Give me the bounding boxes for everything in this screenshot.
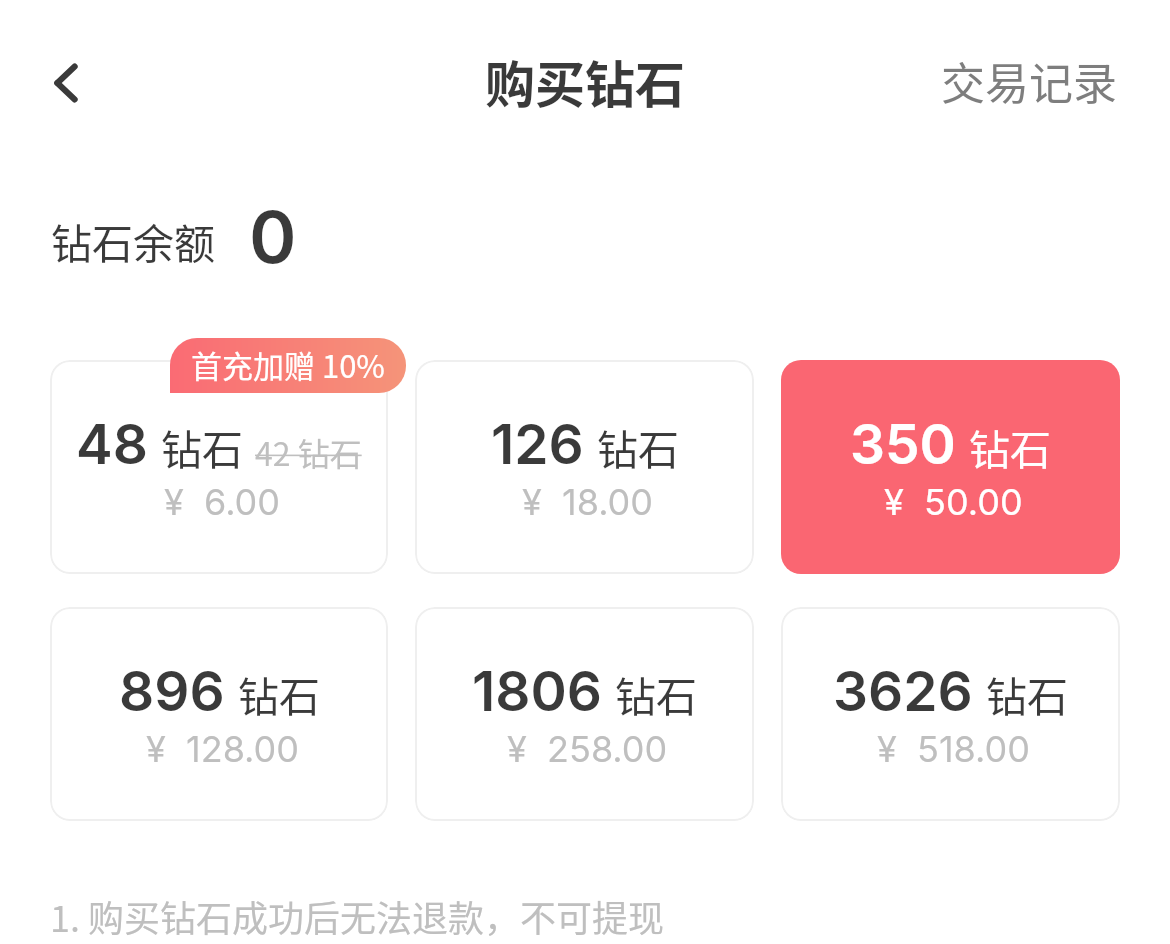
staticText: ¥ 6.00 xyxy=(164,480,281,524)
staticText: 48 xyxy=(76,411,148,478)
staticText: 钻石 xyxy=(238,664,320,723)
staticText: 首充加赠 10% xyxy=(191,342,385,387)
staticText: 1. 购买钻石成功后无法退款，不可提现 xyxy=(50,890,665,942)
button[interactable]: 896 xyxy=(50,607,388,821)
button[interactable]: 交易记录 xyxy=(907,31,1170,131)
staticText: ¥ 128.00 xyxy=(146,727,299,771)
staticText: 钻石 xyxy=(615,664,697,723)
button[interactable]: 126 xyxy=(415,360,754,574)
staticText: 钻石 xyxy=(969,417,1051,476)
staticText: 钻石余额 xyxy=(51,211,215,270)
staticText: 0 xyxy=(249,193,297,280)
button[interactable]: 1806 xyxy=(415,607,754,821)
staticText: 42 钻石 xyxy=(255,429,362,475)
staticText: 126 xyxy=(491,411,584,478)
staticText: ¥ 50.00 xyxy=(884,480,1023,524)
staticText: 350 xyxy=(850,411,956,478)
staticText: ¥ 258.00 xyxy=(507,727,668,771)
button[interactable]: 3626 xyxy=(781,607,1120,821)
staticText: 钻石 xyxy=(161,417,243,476)
staticText: 钻石 xyxy=(597,417,679,476)
staticText: 交易记录 xyxy=(941,49,1117,113)
button[interactable]: 48 xyxy=(50,360,388,574)
staticText: 购买钻石 xyxy=(485,45,685,117)
staticText: 896 xyxy=(119,658,225,725)
staticText: 钻石 xyxy=(986,664,1068,723)
staticText: ¥ 18.00 xyxy=(522,480,654,524)
staticText: 1806 xyxy=(472,658,602,725)
staticText: ¥ 518.00 xyxy=(877,727,1030,771)
button[interactable]: 350 xyxy=(781,360,1120,574)
button[interactable]: Back xyxy=(31,48,101,118)
staticText: 3626 xyxy=(833,658,973,725)
